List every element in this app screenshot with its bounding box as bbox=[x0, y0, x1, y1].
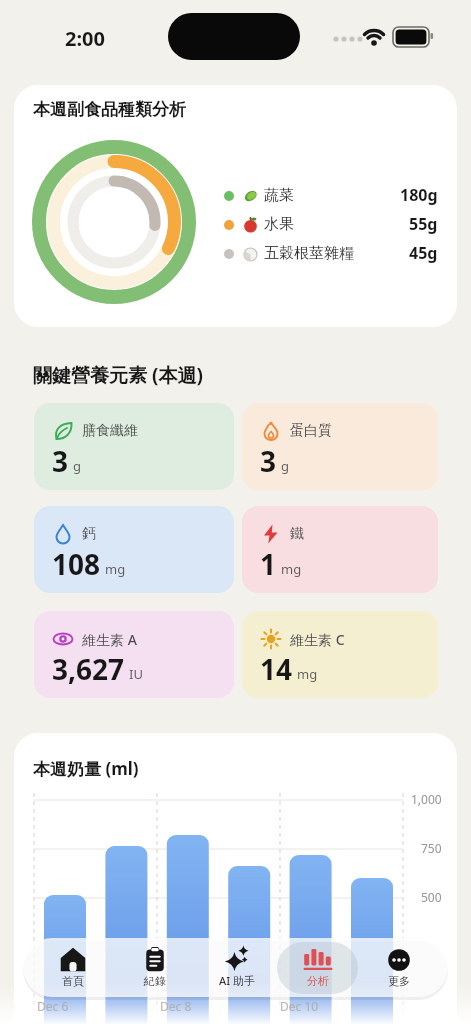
staticText: 750 bbox=[421, 840, 442, 856]
staticText: 500 bbox=[421, 889, 442, 905]
staticText: 五穀根莖雜糧 bbox=[264, 244, 354, 263]
staticText: 本週副食品種類分析 bbox=[33, 99, 186, 120]
staticText: mg bbox=[105, 560, 126, 578]
staticText: 紀錄 bbox=[144, 974, 166, 988]
button[interactable]: 維生素 C bbox=[242, 611, 438, 698]
button[interactable]: 膳食纖維 bbox=[34, 403, 234, 490]
staticText: g bbox=[73, 457, 81, 475]
staticText: Dec 10 bbox=[280, 998, 319, 1014]
button[interactable]: 紀錄 bbox=[114, 938, 196, 997]
staticText: 1,000 bbox=[411, 791, 442, 807]
staticText: 3 bbox=[52, 442, 69, 480]
button[interactable]: 更多 bbox=[358, 938, 439, 997]
staticText: 45g bbox=[409, 242, 438, 264]
staticText: 180g bbox=[400, 184, 438, 206]
staticText: IU bbox=[129, 665, 143, 683]
button[interactable]: 首頁 bbox=[32, 938, 114, 997]
staticText: 鈣 bbox=[82, 525, 96, 543]
staticText: 本週奶量 (ml) bbox=[33, 757, 139, 780]
button[interactable]: 分析 bbox=[277, 938, 358, 997]
staticText: 2:00 bbox=[65, 25, 105, 52]
staticText: g bbox=[281, 457, 289, 475]
staticText: Dec 6 bbox=[37, 998, 69, 1014]
staticText: 更多 bbox=[388, 974, 410, 988]
staticText: 3,627 bbox=[52, 650, 125, 688]
staticText: 分析 bbox=[307, 974, 329, 988]
staticText: mg bbox=[297, 665, 318, 683]
staticText: 3 bbox=[260, 442, 277, 480]
staticText: 1 bbox=[260, 545, 277, 583]
staticText: 首頁 bbox=[62, 974, 84, 988]
staticText: 維生素 A bbox=[82, 630, 137, 649]
staticText: 水果 bbox=[264, 215, 294, 234]
staticText: AI 助手 bbox=[219, 973, 255, 988]
staticText: 蛋白質 bbox=[290, 422, 332, 440]
staticText: mg bbox=[281, 560, 302, 578]
staticText: 55g bbox=[409, 213, 438, 235]
staticText: 關鍵營養元素 (本週) bbox=[33, 362, 203, 388]
button[interactable]: 蛋白質 bbox=[242, 403, 438, 490]
staticText: 蔬菜 bbox=[264, 186, 294, 205]
button[interactable]: 鐵 bbox=[242, 506, 438, 593]
button[interactable]: 鈣 bbox=[34, 506, 234, 593]
staticText: 14 bbox=[260, 650, 293, 688]
staticText: 膳食纖維 bbox=[82, 422, 138, 440]
staticText: Dec 8 bbox=[160, 998, 192, 1014]
button[interactable]: 維生素 A bbox=[34, 611, 234, 698]
staticText: 鐵 bbox=[290, 525, 304, 543]
button[interactable]: AI 助手 bbox=[196, 938, 277, 997]
staticText: 108 bbox=[52, 545, 101, 583]
staticText: 維生素 C bbox=[290, 630, 345, 649]
